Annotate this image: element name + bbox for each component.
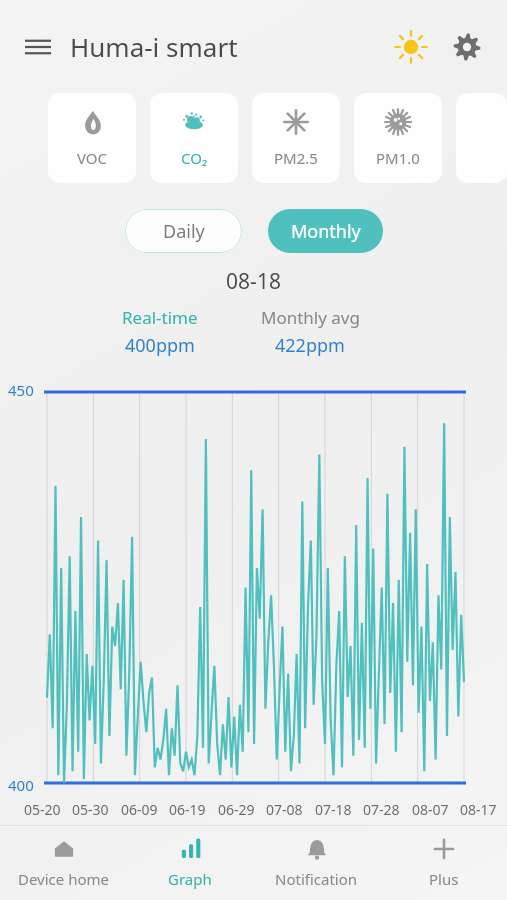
staticText: 400 [8,775,34,795]
button[interactable]: Daily [125,209,242,253]
button[interactable]: Menu [18,27,58,67]
staticText: VOC [77,148,108,168]
button[interactable]: Notification [253,826,380,900]
staticText: Monthly [291,219,361,244]
button[interactable]: CO₂ [150,93,238,183]
button[interactable]: Settings [445,25,489,69]
staticText: 08-18 [0,267,507,296]
staticText: 07-08 [266,800,303,819]
staticText: PM2.5 [274,148,318,168]
button[interactable]: Plus [380,826,507,900]
staticText: 08-07 [412,800,449,819]
staticText: Plus [429,869,459,889]
staticText: 07-28 [363,800,400,819]
staticText: 08-17 [460,800,497,819]
staticText: Notification [275,869,358,889]
staticText: 07-18 [315,800,352,819]
staticText: 400ppm [125,333,195,358]
button[interactable]: Monthly avg [235,306,385,358]
staticText: 06-19 [169,800,206,819]
staticText: 422ppm [275,333,345,358]
button[interactable]: PM2.5 [252,93,340,183]
button[interactable]: PM1.0 [354,93,442,183]
button[interactable]: Monthly [268,209,383,253]
staticText: 05-20 [24,800,61,819]
staticText: Real-time [122,306,198,329]
staticText: 05-30 [72,800,109,819]
button[interactable]: VOC [48,93,136,183]
staticText: CO₂ [181,148,208,168]
staticText: PM1.0 [376,148,420,168]
staticText: 06-29 [218,800,255,819]
staticText: Device home [18,869,109,889]
staticText: 450 [8,380,34,400]
button[interactable]: Device home [0,826,126,900]
staticText: Monthly avg [261,306,360,329]
staticText: Graph [168,869,212,889]
staticText: 06-09 [121,800,158,819]
button[interactable]: Weather [389,25,433,69]
staticText: Huma-i smart [70,29,238,64]
button[interactable]: Graph [126,826,253,900]
button[interactable]: Real-time [95,306,225,358]
staticText: Daily [163,219,205,244]
